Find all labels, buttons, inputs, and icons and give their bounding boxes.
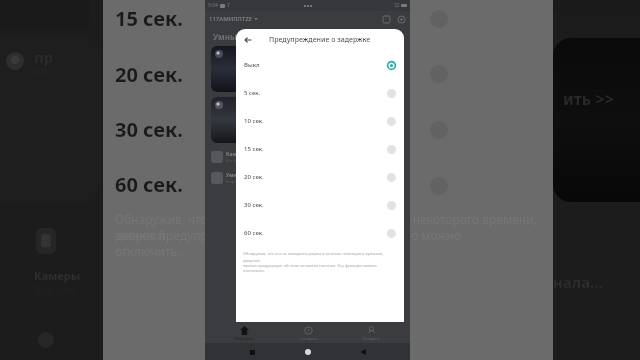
button[interactable]: Назад [355,344,371,360]
staticText: 60 сек. [244,229,387,237]
staticText: ить >> [563,88,614,110]
staticText: Умные устр. [226,172,258,179]
staticText: 32 [394,2,400,9]
staticText: 5 сек. [244,89,387,97]
staticText: Профиль [362,336,380,341]
staticText: 15 сек. [244,145,387,153]
button[interactable]: 10 сек. [236,107,404,135]
staticText: це [34,62,47,77]
button[interactable]: 60 сек. [236,219,404,247]
staticText: отключить. [243,268,265,273]
button[interactable]: Добавить [396,14,406,24]
staticText: пр [34,47,54,67]
staticText: звонок предупредит об этом человека голо… [243,263,377,268]
button[interactable]: Мой дом [220,326,268,341]
staticText: Обнаружив, что кто-то находится рядом в … [243,251,397,263]
staticText: звонок предупредит об этом человека голо… [115,227,462,243]
staticText: Камеры [226,151,247,158]
staticText: 30 сек. [244,201,387,209]
staticText: 5:04 [208,2,218,9]
staticText: Умный дом [213,31,262,42]
staticText: Предупреждение о задержке [269,35,371,45]
staticText: 30 сек. [115,116,183,143]
staticText: отключить. [115,243,181,259]
button[interactable]: Умные устр. [211,172,410,184]
button[interactable]: Камеры [211,151,410,163]
staticText: Все камеры [226,158,249,163]
staticText: Сценарии [298,336,318,341]
staticText: 7 [227,2,230,9]
staticText: Устройства [226,179,248,184]
button[interactable]: Сценарии [284,326,332,341]
staticText: 60 сек. [115,171,183,198]
button[interactable]: 20 сек. [236,163,404,191]
staticText: 20 сек. [115,61,183,88]
staticText: Обнаружив, что кто-то находится рядом в … [115,211,565,243]
button[interactable]: Назад [240,32,256,48]
button[interactable]: Профиль [347,326,395,341]
button[interactable]: 5 сек. [236,79,404,107]
staticText: 15 сек. [115,5,183,32]
staticText: 10 сек. [244,117,387,125]
staticText: нала… [553,272,603,292]
button[interactable]: Выкл [236,51,404,79]
staticText: 20 сек. [244,173,387,181]
button[interactable]: 117АМИЛЛТZЕ [209,15,258,23]
button[interactable]: Сценарии [381,14,391,24]
button[interactable]: Главный экран [300,344,316,360]
button[interactable]: 30 сек. [236,191,404,219]
staticText: Выкл [244,61,387,69]
staticText: 117АМИЛЛТZЕ [209,15,252,23]
staticText: Камеры [34,268,81,283]
button[interactable]: 15 сек. [236,135,404,163]
staticText: Мой дом [235,336,253,341]
button[interactable]: Недавние приложения [244,344,260,360]
